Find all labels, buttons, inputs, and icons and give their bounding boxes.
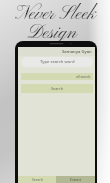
staticText: Samanya Gyan	[62, 49, 92, 55]
staticText: Design	[27, 22, 77, 46]
button[interactable]: all words	[21, 73, 93, 80]
staticText: Type search word	[40, 59, 75, 65]
button[interactable]: Search	[18, 176, 56, 183]
staticText: Search	[51, 86, 64, 91]
button[interactable]: Extract	[56, 176, 95, 183]
button[interactable]: Type search word	[21, 57, 93, 67]
staticText: Never Sleek	[15, 3, 96, 27]
button[interactable]: Samanya Gyan	[18, 47, 95, 56]
staticText: all words	[76, 74, 91, 79]
staticText: Extract	[70, 177, 81, 182]
staticText: Search	[32, 177, 43, 182]
button[interactable]: Search	[21, 84, 93, 93]
